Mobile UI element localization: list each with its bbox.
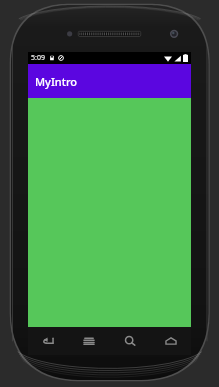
button[interactable]: Menu bbox=[68, 327, 109, 355]
button[interactable]: Back bbox=[28, 327, 68, 355]
button[interactable]: Home bbox=[150, 327, 191, 355]
button[interactable]: Search bbox=[109, 327, 150, 355]
staticText: 5:09 bbox=[31, 53, 45, 63]
button[interactable]: MyIntro bbox=[28, 64, 191, 98]
staticText: MyIntro bbox=[35, 74, 78, 89]
